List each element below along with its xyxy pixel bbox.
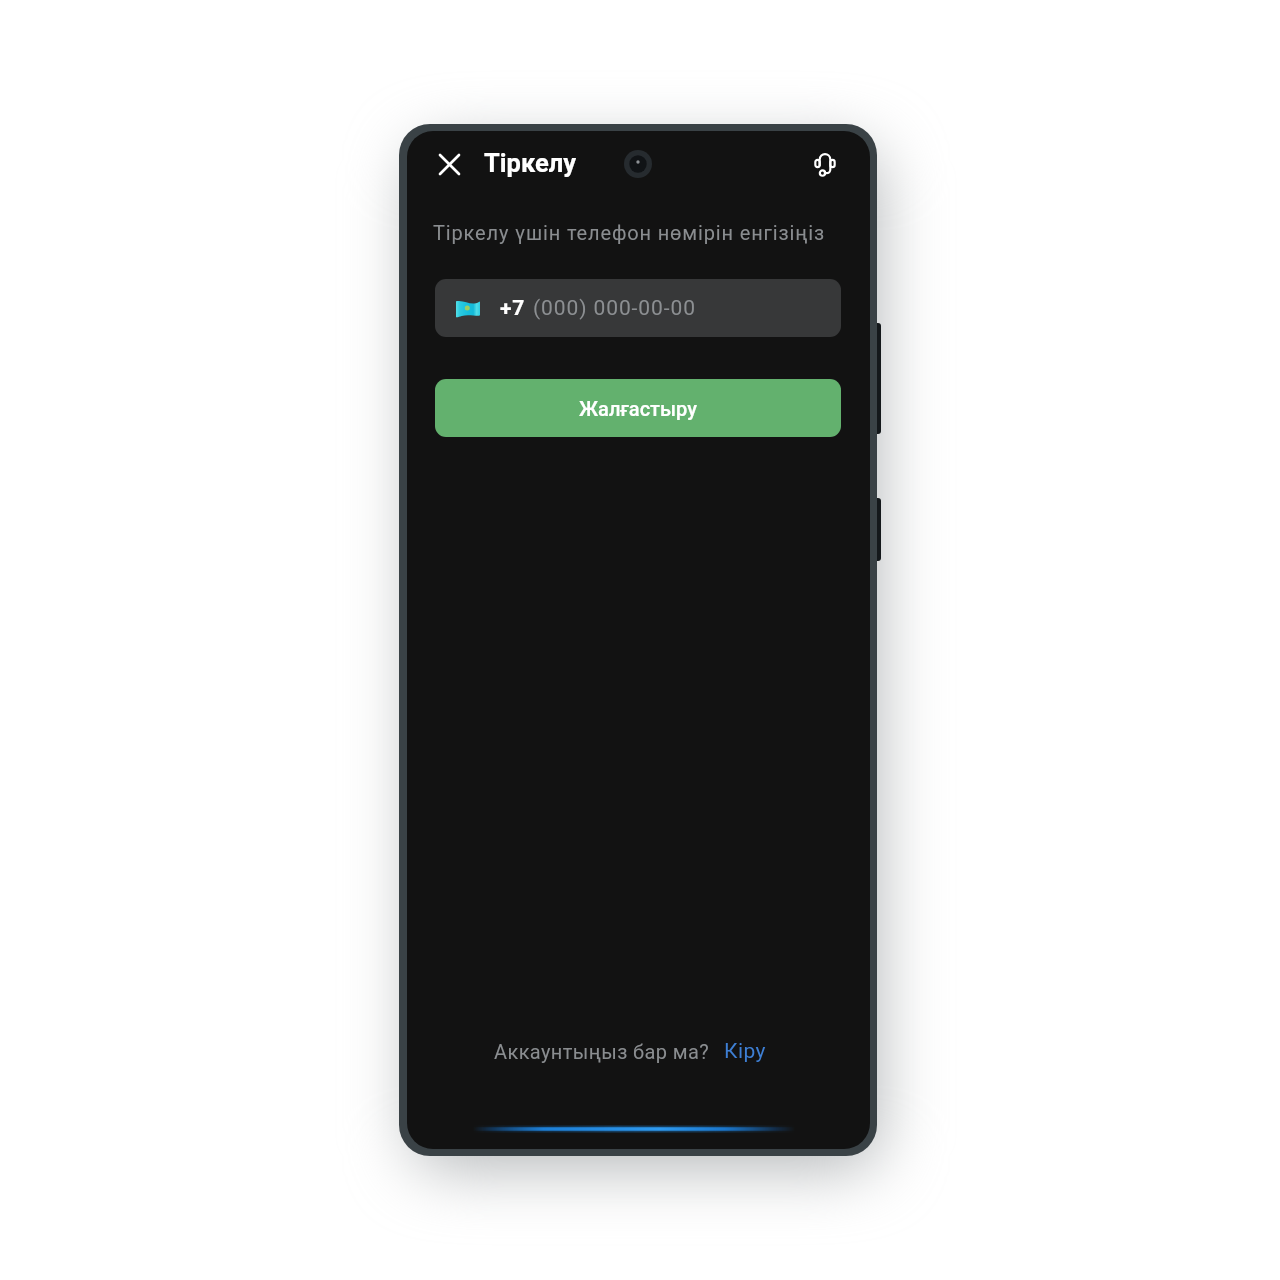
staticText: Тіркелу [484,148,577,178]
button[interactable]: +7 [435,279,841,337]
button[interactable]: Кіру [724,1039,766,1064]
staticText: Жалғастыру [579,397,697,420]
staticText: +7 [500,296,526,321]
staticText: Аккаунтыңыз бар ма? [494,1040,710,1063]
button[interactable]: Support [804,142,845,183]
staticText: Тіркелу үшін телефон нөмірін енгізіңіз [433,221,825,244]
button[interactable]: Close [429,144,470,185]
button[interactable]: Жалғастыру [435,379,841,437]
staticText: (000) 000-00-00 [533,296,696,321]
staticText: Кіру [724,1039,766,1064]
